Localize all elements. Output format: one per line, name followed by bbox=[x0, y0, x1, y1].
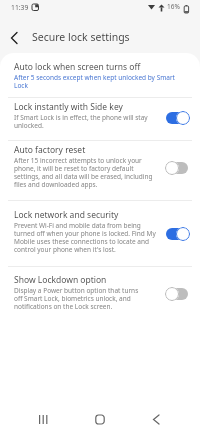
button[interactable] bbox=[4, 28, 26, 48]
button[interactable] bbox=[165, 287, 190, 301]
staticText: Auto lock when screen turns off bbox=[14, 61, 141, 73]
button[interactable] bbox=[0, 267, 200, 320]
staticText: Prevent Wi-Fi and mobile data from being… bbox=[14, 221, 156, 254]
button[interactable] bbox=[165, 111, 190, 125]
staticText: Show Lockdown option bbox=[14, 274, 107, 286]
button[interactable] bbox=[0, 141, 200, 200]
button[interactable] bbox=[88, 408, 112, 432]
button[interactable] bbox=[0, 201, 200, 266]
button[interactable] bbox=[144, 408, 168, 432]
staticText: If Smart Lock is in effect, the phone wi… bbox=[14, 113, 148, 130]
staticText: Lock instantly with Side key bbox=[14, 101, 123, 113]
button[interactable] bbox=[165, 227, 190, 241]
button[interactable] bbox=[165, 161, 190, 175]
button[interactable] bbox=[0, 98, 200, 140]
staticText: Auto factory reset bbox=[14, 144, 86, 156]
button[interactable] bbox=[0, 54, 200, 97]
staticText: After 5 seconds except when kept unlocke… bbox=[14, 73, 175, 90]
staticText: Lock network and security bbox=[14, 209, 119, 221]
staticText: Secure lock settings bbox=[32, 30, 130, 44]
staticText: After 15 incorrect attempts to unlock yo… bbox=[14, 156, 153, 189]
staticText: 11:39 bbox=[11, 3, 29, 12]
staticText: Display a Power button option that turns… bbox=[14, 286, 139, 311]
button[interactable] bbox=[32, 408, 56, 432]
staticText: 16% bbox=[167, 2, 180, 11]
